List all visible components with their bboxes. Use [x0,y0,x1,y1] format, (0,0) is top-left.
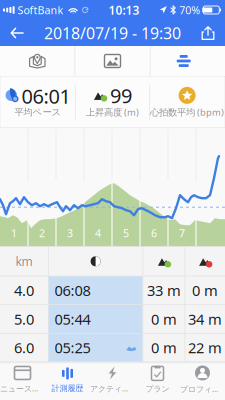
staticText: 計測履歴 [51,383,83,393]
button[interactable]: Back [0,20,34,46]
staticText: 33 m [147,281,181,300]
staticText: ニュースフィード [0,383,45,394]
button[interactable]: 計測履歴 [45,363,90,400]
staticText: 2018/07/19 - 19:30 [44,22,181,44]
staticText: 05:44 [55,309,91,329]
staticText: 平均ペース [14,106,61,118]
staticText: 06:01 [21,83,70,109]
staticText: 6.0 [14,338,34,357]
staticText: 10:13 [108,2,139,18]
staticText: 2 [39,226,45,240]
staticText: 22 m [188,338,222,357]
staticText: 34 m [188,309,222,329]
staticText: 5 [123,226,129,240]
button[interactable]: プロフィール [180,363,225,400]
button[interactable]: プラン [135,363,180,400]
staticText: 6 [151,226,157,240]
staticText: 上昇高度 (m) [86,106,139,118]
staticText: 5.0 [14,309,34,329]
staticText: 05:25 [55,338,91,357]
button[interactable]: Share [191,20,225,46]
staticText: 0 m [151,309,177,329]
staticText: 心拍数平均 (bpm) [150,106,224,118]
staticText: プロフィール [180,383,225,394]
button[interactable]: アクティビティ [90,363,135,400]
staticText: 0 m [192,281,218,300]
button[interactable]: 4.0 [0,276,225,304]
staticText: 0 m [151,338,177,357]
button[interactable]: Photos [75,46,150,76]
staticText: アクティビティ [90,383,135,394]
staticText: 7 [179,226,185,240]
staticText: 70% [179,3,200,17]
staticText: 4 [95,226,101,240]
button[interactable]: Map [0,46,75,76]
staticText: プラン [145,384,169,394]
button[interactable]: ニュースフィード [0,363,45,400]
staticText: 1 [11,226,17,240]
staticText: 4.0 [14,281,34,300]
staticText: 06:08 [55,281,91,300]
button[interactable]: 6.0 [0,334,225,362]
staticText: SoftBank [18,3,64,17]
staticText: 3 [67,226,73,240]
staticText: km [15,253,32,269]
button[interactable]: 5.0 [0,305,225,333]
staticText: 99 [110,82,132,109]
button[interactable]: Splits [150,46,225,76]
